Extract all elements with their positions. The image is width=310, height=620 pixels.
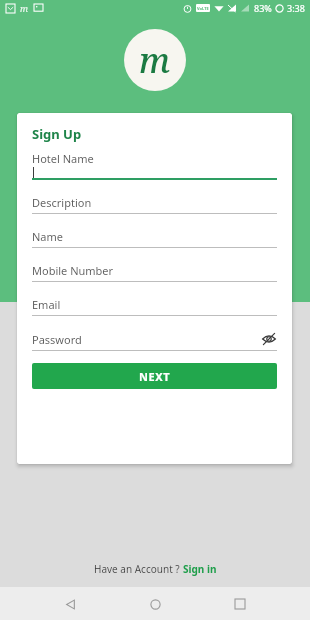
staticText: 83% (254, 2, 272, 14)
button[interactable]: Description (32, 195, 277, 214)
button[interactable]: Hotel Name (32, 151, 277, 180)
button[interactable]: Sign in (183, 562, 217, 576)
staticText: Sign Up (32, 125, 82, 143)
staticText: Name (32, 229, 277, 244)
button[interactable]: Name (32, 229, 277, 248)
staticText: Have an Account ? (94, 562, 183, 576)
staticText: m (139, 37, 171, 83)
button[interactable]: Toggle password visibility (261, 331, 277, 347)
button[interactable]: Recents (225, 589, 255, 619)
staticText: Email (32, 297, 277, 312)
staticText: Password (32, 332, 261, 347)
staticText: m (20, 2, 29, 14)
button[interactable]: Password (32, 331, 277, 351)
button[interactable]: Back (55, 589, 85, 619)
staticText: 3:38 (287, 2, 305, 14)
button[interactable]: NEXT (32, 363, 277, 389)
staticText: Mobile Number (32, 263, 277, 278)
button[interactable]: Email (32, 297, 277, 316)
button[interactable]: Mobile Number (32, 263, 277, 282)
staticText: Hotel Name (32, 151, 277, 166)
staticText: NEXT (139, 369, 171, 384)
button[interactable]: Home (140, 589, 170, 619)
staticText: VoLTE (197, 6, 209, 11)
staticText: Description (32, 195, 277, 210)
staticText: Sign in (183, 562, 217, 576)
